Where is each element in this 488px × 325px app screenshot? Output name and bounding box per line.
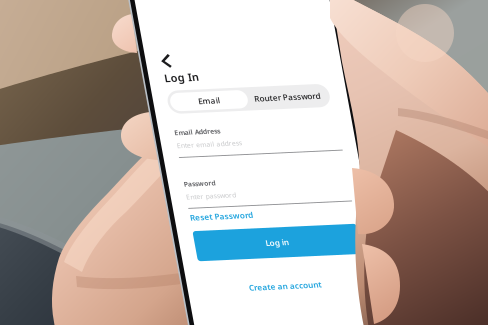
staticText: Reset Password xyxy=(21,243,83,254)
button[interactable]: Email xyxy=(23,123,99,141)
staticText: Router Password xyxy=(105,127,170,137)
staticText: Create an account xyxy=(66,316,137,325)
staticText: Email xyxy=(50,127,71,137)
button[interactable]: Reset Password xyxy=(21,243,83,254)
button[interactable]: Router Password xyxy=(99,123,177,141)
button[interactable]: Create an account xyxy=(21,316,182,325)
staticText: Log in xyxy=(90,272,113,283)
button[interactable]: Log in xyxy=(21,262,182,293)
